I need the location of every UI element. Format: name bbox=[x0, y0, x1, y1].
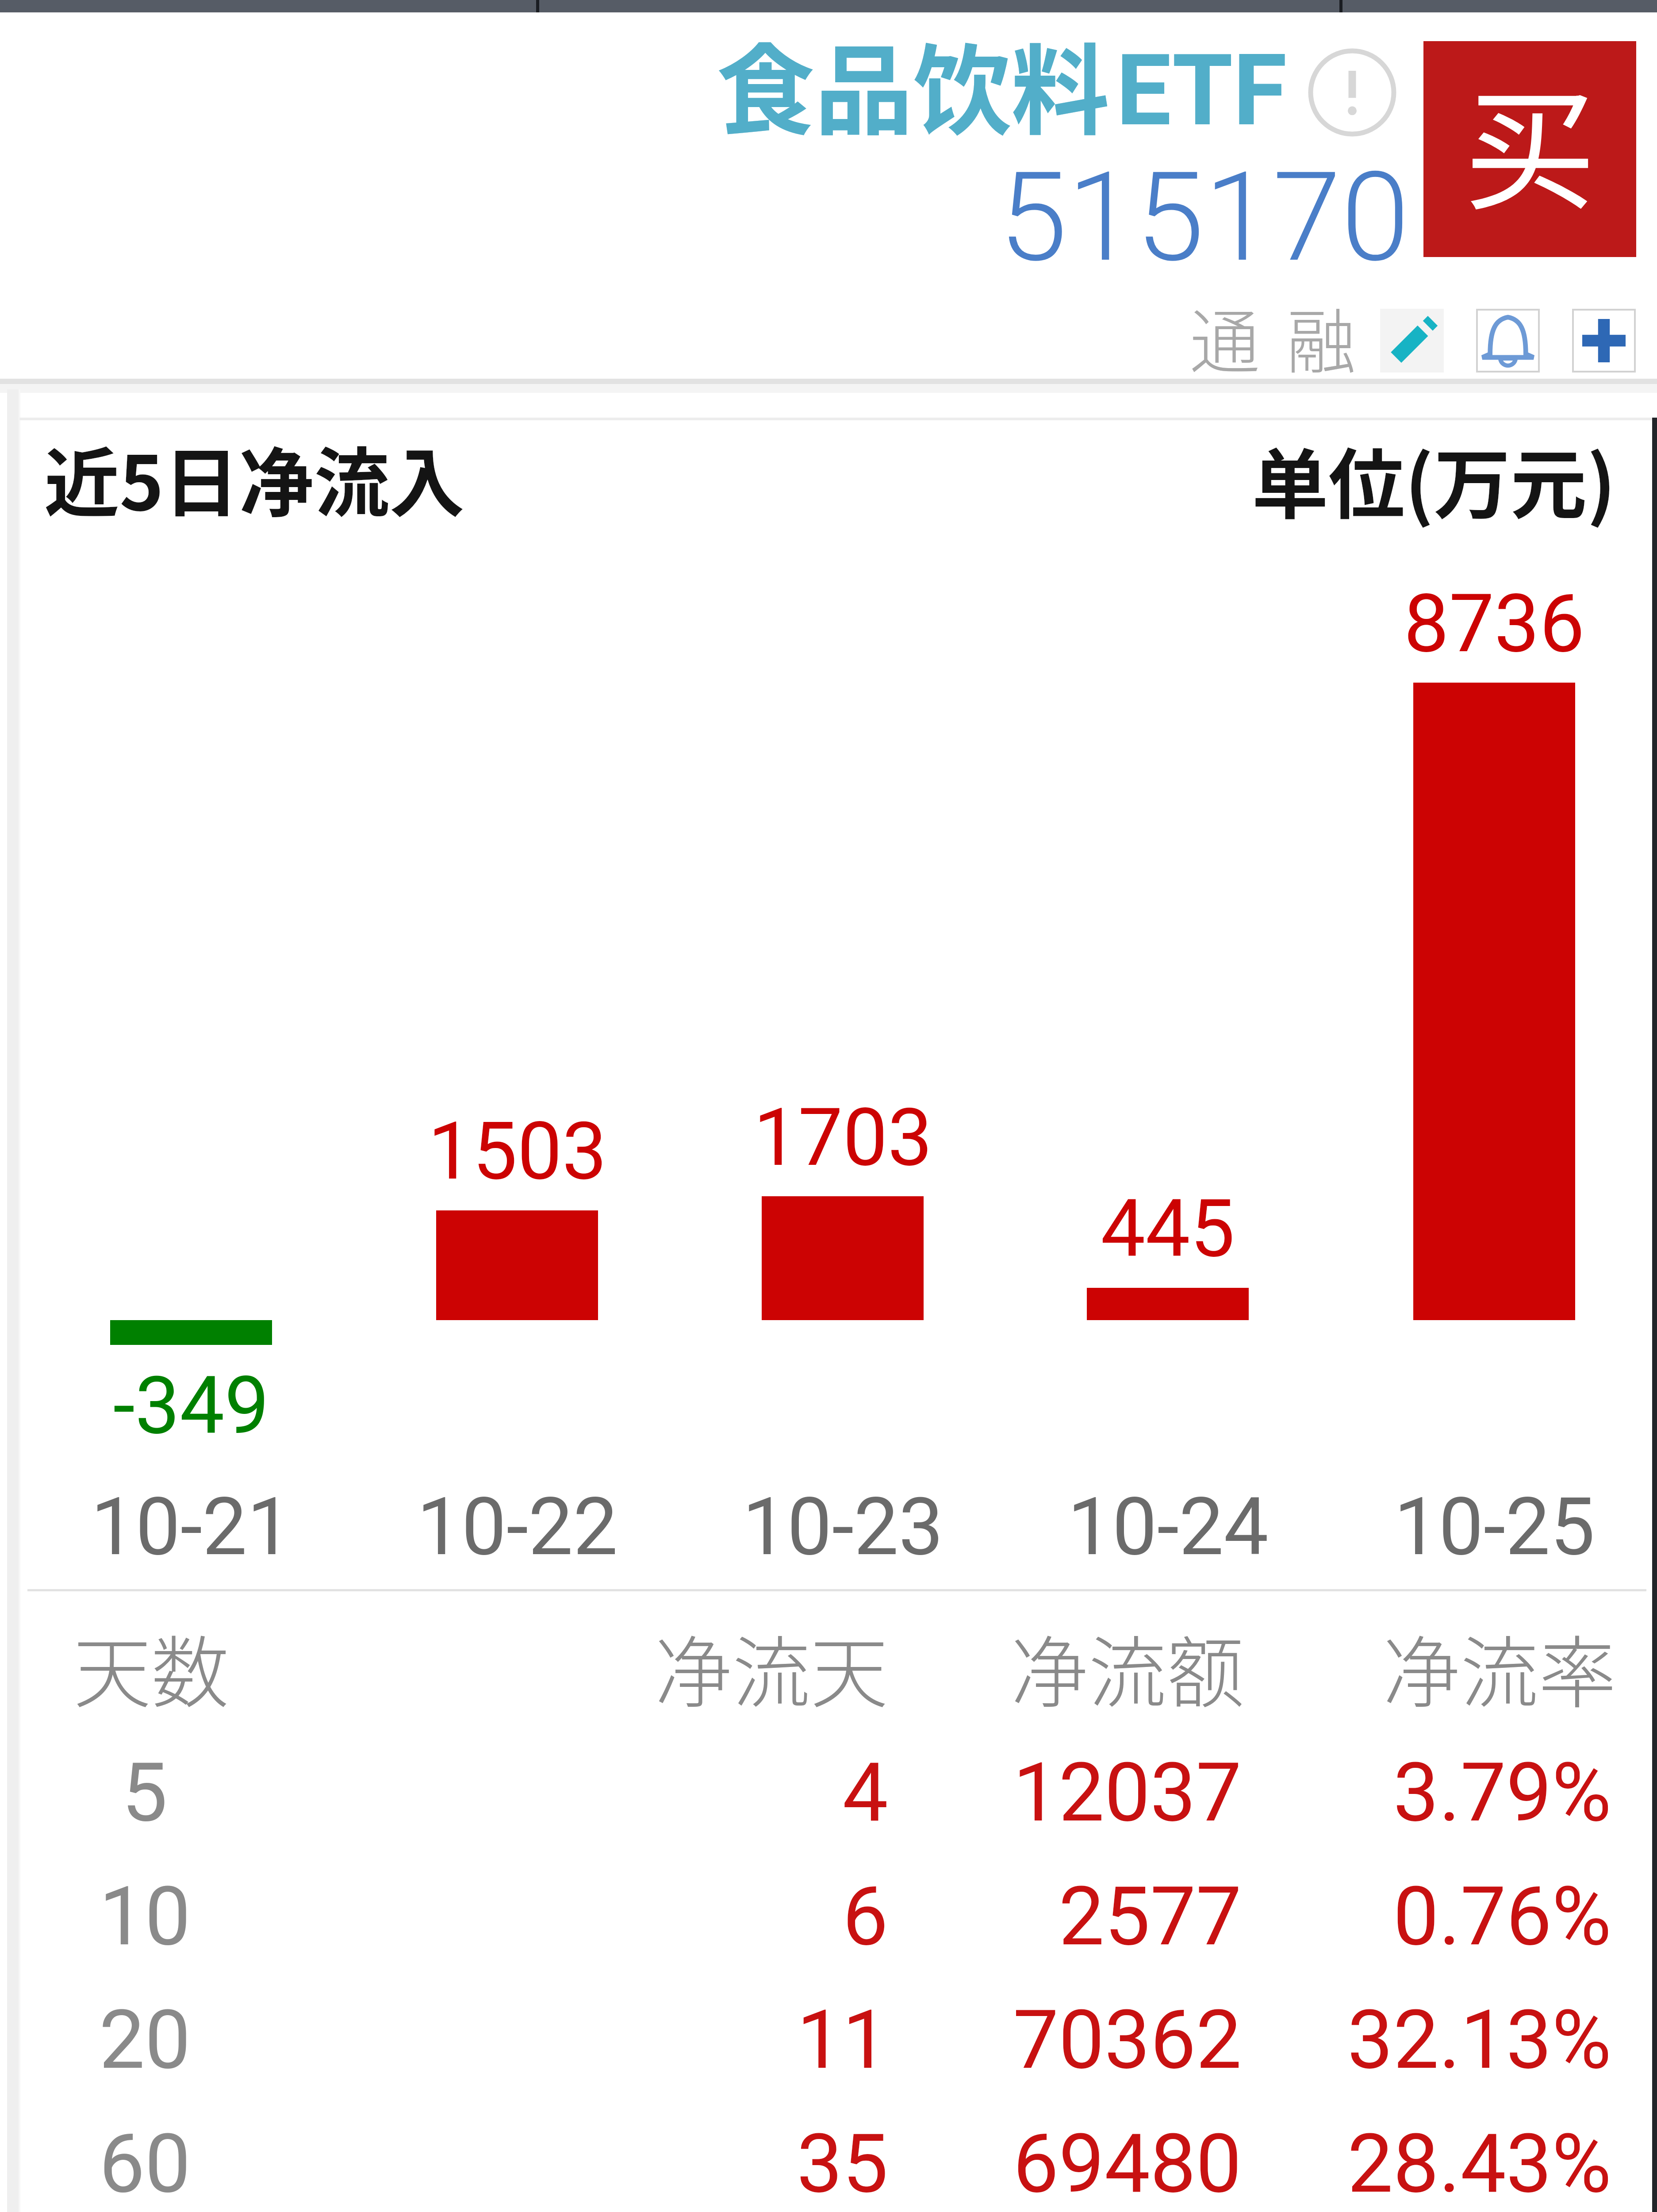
staticText: 445 bbox=[1101, 1182, 1235, 1275]
staticText: 60 bbox=[99, 2116, 191, 2212]
staticText: 食品饮料 bbox=[717, 12, 1109, 154]
staticText: 单位(万元) bbox=[1252, 423, 1616, 534]
staticText: 净流率 bbox=[1383, 1611, 1617, 1724]
button[interactable] bbox=[27, 1947, 1646, 2070]
button[interactable]: Alert bbox=[1476, 309, 1540, 373]
staticText: 1503 bbox=[428, 1105, 607, 1198]
staticText: 20 bbox=[99, 1992, 191, 2088]
staticText: 35 bbox=[797, 2116, 888, 2212]
staticText: 11 bbox=[797, 1992, 888, 2088]
staticText: 0.76% bbox=[1393, 1869, 1611, 1964]
staticText: 3.79% bbox=[1393, 1745, 1611, 1840]
staticText: 515170 bbox=[999, 145, 1410, 290]
staticText: 近5日净流入 bbox=[44, 423, 465, 532]
staticText: 5 bbox=[122, 1745, 168, 1840]
staticText: 融 bbox=[1286, 286, 1356, 388]
staticText: 通 bbox=[1190, 286, 1260, 388]
staticText: 10-21 bbox=[91, 1480, 292, 1574]
staticText: 28.43% bbox=[1347, 2116, 1611, 2212]
staticText: 70362 bbox=[1013, 1992, 1242, 2088]
button[interactable] bbox=[27, 2071, 1646, 2194]
staticText: 净流额 bbox=[1011, 1611, 1245, 1724]
staticText: 买 bbox=[1464, 45, 1596, 237]
staticText: 10-25 bbox=[1394, 1480, 1595, 1574]
button[interactable]: Info bbox=[1304, 44, 1401, 141]
staticText: 4 bbox=[842, 1745, 888, 1840]
staticText: 1703 bbox=[753, 1091, 932, 1184]
staticText: 天数 bbox=[73, 1611, 230, 1724]
staticText: 32.13% bbox=[1347, 1992, 1611, 2088]
button[interactable] bbox=[27, 1700, 1646, 1823]
button[interactable]: Edit bbox=[1380, 309, 1444, 373]
staticText: 净流天 bbox=[655, 1611, 889, 1724]
staticText: 69480 bbox=[1013, 2116, 1242, 2212]
button[interactable]: 买 bbox=[1423, 41, 1636, 257]
staticText: 10-24 bbox=[1067, 1480, 1269, 1574]
staticText: 6 bbox=[842, 1869, 888, 1964]
staticText: 12037 bbox=[1013, 1745, 1242, 1840]
staticText: ETF bbox=[1116, 33, 1287, 148]
staticText: 10 bbox=[99, 1869, 191, 1964]
staticText: 10-22 bbox=[417, 1480, 618, 1574]
staticText: -349 bbox=[113, 1359, 269, 1452]
staticText: 2577 bbox=[1059, 1869, 1242, 1964]
button[interactable]: 食品饮料 bbox=[717, 12, 1109, 154]
button[interactable] bbox=[27, 1824, 1646, 1947]
button[interactable]: Add bbox=[1572, 309, 1636, 373]
staticText: 8736 bbox=[1404, 576, 1585, 671]
staticText: 10-23 bbox=[742, 1480, 944, 1574]
